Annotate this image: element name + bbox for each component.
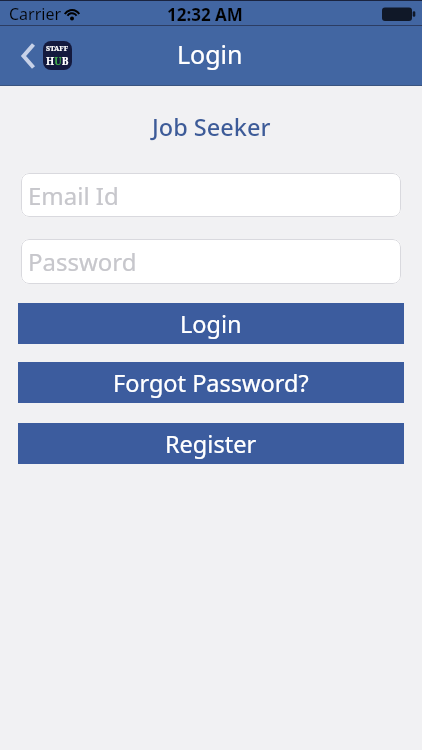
button[interactable]: Forgot Password? <box>18 362 404 403</box>
button[interactable]: STAFF <box>43 41 72 70</box>
button[interactable] <box>12 33 44 79</box>
button[interactable]: Login <box>18 303 404 344</box>
staticText: Login <box>177 37 243 71</box>
button[interactable]: Email Id <box>21 173 401 217</box>
staticText: Email Id <box>28 179 119 212</box>
staticText: Login <box>180 308 242 340</box>
staticText: Register <box>165 428 257 460</box>
staticText: Password <box>28 245 137 278</box>
staticText: Job Seeker <box>152 111 271 143</box>
button[interactable]: Password <box>21 239 401 284</box>
staticText: Carrier <box>9 3 62 25</box>
staticText: Forgot Password? <box>113 367 309 399</box>
staticText: 12:32 AM <box>167 3 243 26</box>
staticText: STAFF <box>46 44 69 54</box>
button[interactable]: Register <box>18 423 404 464</box>
staticText: HUB <box>46 54 69 68</box>
